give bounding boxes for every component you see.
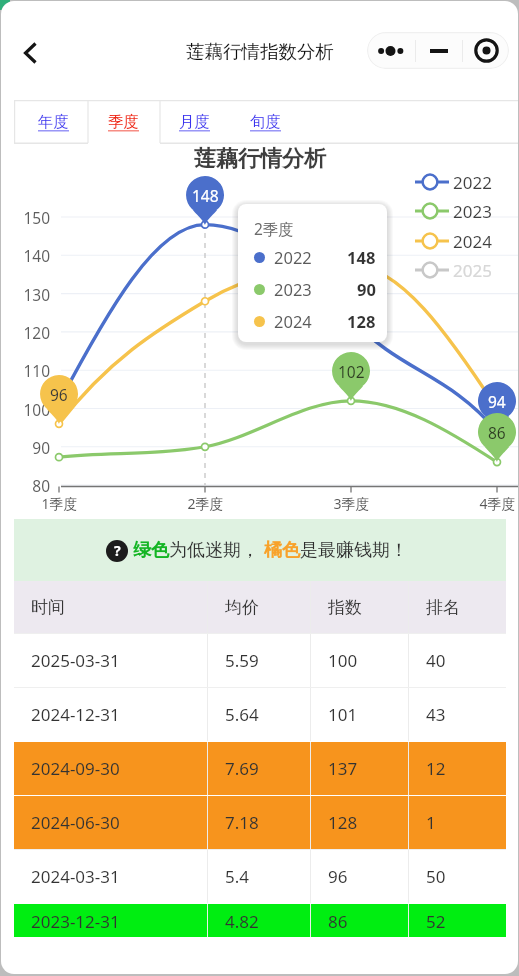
staticText: 5.59: [225, 649, 259, 672]
staticText: 莲藕行情分析: [194, 145, 326, 173]
staticText: 80: [32, 475, 50, 496]
button[interactable]: 2025: [411, 256, 492, 284]
staticText: 40: [426, 649, 446, 672]
staticText: 2季度: [254, 218, 294, 239]
staticText: 月度: [179, 112, 210, 132]
staticText: 2季度: [187, 494, 224, 513]
staticText: 96: [50, 384, 68, 405]
staticText: 为低迷期，: [169, 539, 259, 562]
button[interactable]: 旬度: [230, 100, 300, 144]
button[interactable]: More options: [367, 32, 415, 69]
staticText: 150: [23, 207, 50, 228]
staticText: 指数: [328, 597, 362, 618]
button[interactable]: 2024: [411, 227, 492, 255]
staticText: 7.18: [225, 811, 259, 834]
button[interactable]: 2024-12-31: [14, 688, 506, 741]
staticText: 120: [23, 322, 50, 343]
staticText: 均价: [225, 597, 259, 618]
staticText: 130: [23, 284, 50, 305]
staticText: 86: [488, 422, 506, 443]
staticText: 5.4: [225, 865, 250, 888]
button[interactable]: 2024-03-31: [14, 850, 506, 903]
button[interactable]: Minimize: [416, 32, 462, 69]
staticText: 43: [426, 703, 446, 726]
button[interactable]: 2023: [411, 197, 492, 225]
staticText: 1季度: [41, 494, 78, 513]
staticText: 2024-12-31: [31, 703, 120, 726]
staticText: 时间: [31, 597, 65, 618]
staticText: 年度: [38, 112, 69, 132]
staticText: 128: [328, 811, 358, 834]
staticText: 128: [347, 310, 376, 332]
staticText: 140: [23, 245, 50, 266]
button[interactable]: 2022: [411, 168, 492, 196]
staticText: 2025: [453, 259, 492, 282]
staticText: 2024: [274, 310, 312, 332]
staticText: 90: [32, 437, 50, 458]
button[interactable]: 2023-12-31: [14, 904, 506, 937]
staticText: 2022: [453, 171, 492, 194]
staticText: 橘色: [264, 539, 300, 562]
staticText: 2022: [274, 246, 312, 268]
staticText: 1: [426, 811, 436, 834]
button[interactable]: Close: [463, 32, 509, 69]
staticText: 3季度: [333, 494, 370, 513]
staticText: 102: [338, 361, 365, 382]
staticText: 110: [23, 360, 50, 381]
staticText: 2023: [274, 278, 312, 300]
staticText: 2024: [453, 230, 492, 253]
staticText: 137: [328, 757, 358, 780]
staticText: 100: [23, 399, 50, 420]
button[interactable]: 季度: [88, 100, 158, 144]
button[interactable]: 月度: [159, 100, 229, 144]
staticText: 148: [192, 185, 219, 206]
staticText: 7.69: [225, 757, 259, 780]
staticText: 2023: [453, 200, 492, 223]
staticText: 90: [357, 278, 376, 300]
button[interactable]: 2025-03-31: [14, 634, 506, 687]
staticText: 2024-06-30: [31, 811, 120, 834]
staticText: 50: [426, 865, 446, 888]
staticText: 莲藕行情指数分析: [186, 40, 334, 63]
staticText: 绿色: [133, 539, 169, 562]
staticText: 12: [426, 757, 446, 780]
staticText: 4季度: [479, 494, 516, 513]
button[interactable]: 年度: [18, 100, 88, 144]
staticText: 排名: [426, 597, 460, 618]
staticText: 86: [328, 910, 348, 933]
staticText: 2024-09-30: [31, 757, 120, 780]
staticText: ?: [114, 541, 121, 560]
staticText: 4.82: [225, 910, 259, 933]
staticText: 旬度: [250, 112, 281, 132]
staticText: 100: [328, 649, 358, 672]
staticText: 2025-03-31: [31, 649, 120, 672]
staticText: 是最赚钱期！: [300, 539, 408, 562]
staticText: 2024-03-31: [31, 865, 120, 888]
staticText: 52: [426, 910, 446, 933]
staticText: 94: [488, 391, 506, 412]
button[interactable]: 2024-09-30: [14, 742, 506, 795]
button[interactable]: Back: [8, 31, 52, 75]
staticText: 5.64: [225, 703, 259, 726]
staticText: 101: [328, 703, 358, 726]
staticText: 96: [328, 865, 348, 888]
staticText: 2023-12-31: [31, 910, 120, 933]
staticText: 148: [347, 246, 376, 268]
staticText: 季度: [108, 112, 139, 132]
button[interactable]: 2024-06-30: [14, 796, 506, 849]
